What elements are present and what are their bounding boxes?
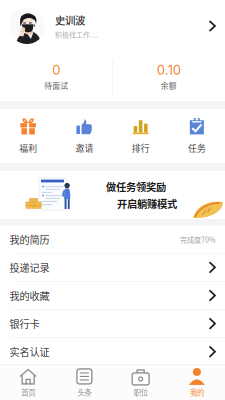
staticText: 银行卡 (9, 316, 39, 331)
staticText: 福利 (19, 142, 37, 154)
button[interactable]: 银行卡 (0, 310, 225, 337)
button[interactable]: 投递记录 (0, 254, 225, 281)
button[interactable]: 排行 (112, 109, 169, 163)
staticText: 任务 (188, 142, 206, 154)
staticText: 排行 (132, 142, 150, 154)
staticText: 投递记录 (9, 260, 49, 275)
staticText: 开启躺赚模式 (117, 196, 177, 211)
staticText: 实名认证 (9, 344, 49, 359)
button[interactable]: 做任务领奖励 (0, 171, 225, 219)
staticText: 职位 (134, 387, 148, 398)
staticText: 做任务领奖励 (106, 179, 166, 194)
staticText: 我的 (190, 387, 204, 398)
staticText: 邀请 (75, 142, 93, 154)
button[interactable]: 我的收藏 (0, 282, 225, 309)
staticText: 史训波 (55, 12, 85, 28)
staticText: 待面试 (44, 80, 68, 91)
button[interactable]: 首页 (0, 364, 56, 400)
button[interactable]: 实名认证 (0, 338, 225, 365)
staticText: 我的收藏 (9, 288, 49, 303)
staticText: 0 (52, 62, 60, 78)
button[interactable]: 头条 (56, 364, 112, 400)
staticText: 完成度70% (180, 234, 216, 244)
staticText: 余额 (161, 80, 177, 91)
staticText: 首页 (21, 387, 35, 398)
staticText: 我的简历 (9, 232, 49, 247)
button[interactable]: 我的简历 (0, 226, 225, 253)
staticText: 0.10 (157, 62, 181, 78)
button[interactable]: 福利 (0, 109, 56, 163)
button[interactable]: 任务 (169, 109, 225, 163)
staticText: 积极找工作.... (55, 29, 98, 39)
button[interactable]: 0 (0, 53, 112, 100)
button[interactable]: 史训波 (0, 0, 225, 52)
button[interactable]: 我的 (169, 364, 225, 400)
button[interactable]: 邀请 (56, 109, 112, 163)
button[interactable]: 0.10 (112, 53, 225, 100)
button[interactable]: 职位 (112, 364, 169, 400)
staticText: 头条 (77, 387, 91, 398)
